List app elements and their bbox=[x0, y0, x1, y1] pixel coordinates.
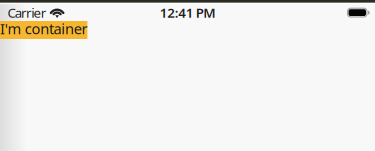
staticText: I'm container bbox=[0, 19, 87, 38]
staticText: Carrier bbox=[7, 4, 47, 21]
staticText: 12:41 PM bbox=[160, 4, 215, 21]
